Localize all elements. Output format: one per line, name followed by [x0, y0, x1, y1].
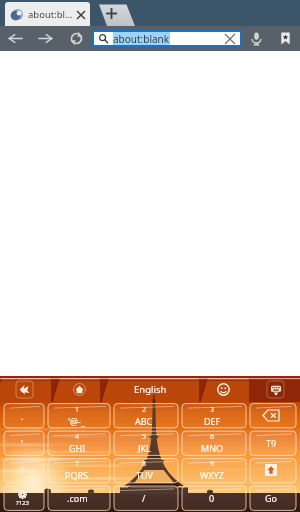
button[interactable]: .	[0, 402, 44, 429]
staticText: JKL	[138, 442, 151, 454]
staticText: 8	[142, 459, 147, 469]
button[interactable]: 6	[178, 429, 246, 456]
staticText: 9	[210, 459, 215, 469]
button[interactable]: Bookmark	[270, 26, 300, 51]
button[interactable]: 2	[110, 402, 178, 429]
button[interactable]	[246, 456, 296, 484]
button[interactable]: Theme	[16, 381, 33, 398]
staticText: Go	[265, 492, 277, 504]
staticText: 7	[75, 459, 80, 469]
button[interactable]: '	[0, 429, 44, 456]
button[interactable]: about:blank	[94, 32, 240, 45]
staticText: 1	[75, 405, 80, 415]
button[interactable]: New tab	[94, 0, 128, 26]
staticText: 2	[142, 405, 147, 415]
button[interactable]: /	[110, 484, 178, 512]
staticText: WXYZ	[200, 469, 224, 481]
staticText: ?	[20, 464, 24, 476]
button[interactable]: Close tab	[74, 8, 87, 21]
staticText: TUV	[136, 469, 153, 481]
button[interactable]: Forward	[30, 26, 60, 51]
staticText: '	[21, 437, 24, 449]
staticText: ABC	[135, 415, 153, 427]
staticText: 0	[209, 492, 215, 504]
staticText: 6	[210, 432, 215, 442]
button[interactable]: Hide keyboard	[267, 381, 284, 398]
staticText: .	[21, 410, 24, 422]
button[interactable]: about:bl…	[5, 2, 90, 26]
button[interactable]: T9	[246, 429, 296, 456]
button[interactable]: 4	[44, 429, 110, 456]
button[interactable]: English	[134, 383, 167, 396]
button[interactable]: 8	[110, 456, 178, 484]
button[interactable]: Home	[73, 383, 86, 396]
staticText: .com	[67, 492, 88, 504]
button[interactable]: Clear	[223, 32, 237, 45]
button[interactable]: 9	[178, 456, 246, 484]
staticText: GHI	[69, 442, 86, 454]
staticText: PQRS	[65, 469, 89, 481]
staticText: 3	[210, 405, 215, 415]
button[interactable]	[246, 402, 296, 429]
staticText: English	[134, 383, 167, 396]
staticText: 5	[142, 432, 147, 442]
button[interactable]: Go	[246, 484, 296, 512]
staticText: /	[142, 492, 146, 504]
staticText: MNO	[201, 442, 224, 454]
button[interactable]: 0	[178, 484, 246, 512]
button[interactable]: Emoji	[217, 383, 230, 396]
button[interactable]: Voice search	[242, 26, 270, 51]
button[interactable]: Reload	[60, 26, 92, 51]
button[interactable]: ?	[0, 456, 44, 484]
staticText: ?123	[16, 499, 29, 507]
staticText: 4	[75, 432, 80, 442]
button[interactable]: 3	[178, 402, 246, 429]
button[interactable]: .com	[44, 484, 110, 512]
staticText: about:bl…	[28, 8, 73, 21]
button[interactable]: 7	[44, 456, 110, 484]
staticText: '@-_	[68, 415, 86, 427]
button[interactable]: 5	[110, 429, 178, 456]
button[interactable]: ?123	[0, 484, 44, 512]
staticText: DEF	[204, 415, 221, 427]
button[interactable]: 1	[44, 402, 110, 429]
button[interactable]: Back	[0, 26, 30, 51]
staticText: T9	[266, 437, 277, 449]
staticText: about:blank	[113, 32, 170, 45]
